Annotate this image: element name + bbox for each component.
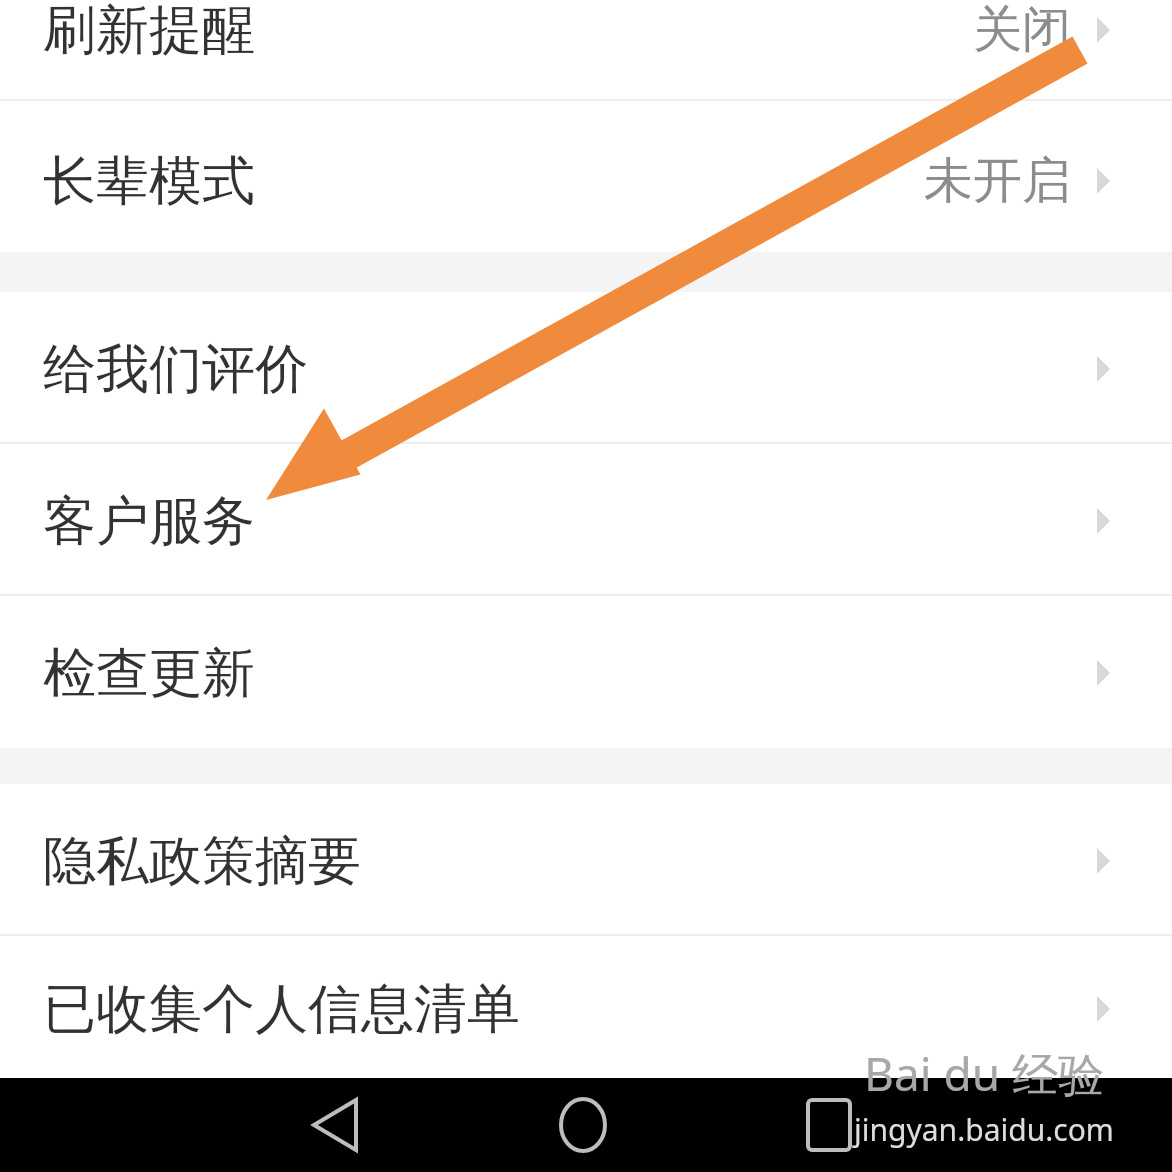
- button[interactable]: 已收集个人信息清单: [0, 936, 1172, 1078]
- button[interactable]: 给我们评价: [0, 292, 1172, 444]
- button[interactable]: 长辈模式 未开启: [0, 101, 1172, 252]
- button[interactable]: 隐私政策摘要: [0, 784, 1172, 936]
- staticText: 未开启: [924, 150, 1071, 212]
- button[interactable]: 客户服务: [0, 444, 1172, 596]
- staticText: 隐私政策摘要: [43, 828, 361, 895]
- staticText: jingyan.baidu.com: [854, 1109, 1114, 1150]
- button[interactable]: 刷新提醒 关闭: [0, 0, 1172, 101]
- staticText: 长辈模式: [43, 148, 255, 215]
- button[interactable]: Recent apps: [784, 1078, 874, 1172]
- button[interactable]: Back: [290, 1078, 380, 1172]
- button[interactable]: Home: [538, 1078, 628, 1172]
- staticText: 刷新提醒: [43, 0, 255, 64]
- staticText: 检查更新: [43, 640, 255, 707]
- staticText: 给我们评价: [43, 336, 308, 403]
- button[interactable]: 检查更新: [0, 596, 1172, 748]
- staticText: 已收集个人信息清单: [43, 976, 520, 1043]
- staticText: Bai du 经验: [864, 1042, 1105, 1105]
- staticText: 客户服务: [43, 488, 255, 555]
- staticText: 关闭: [973, 0, 1071, 61]
